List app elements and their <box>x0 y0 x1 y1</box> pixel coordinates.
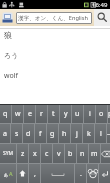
staticText: h <box>62 129 67 139</box>
button[interactable]: d <box>23 124 34 143</box>
staticText: m <box>91 149 98 159</box>
button[interactable]: p <box>108 105 110 123</box>
button[interactable]: 漢字、オン、くん、English <box>16 12 92 24</box>
button[interactable]: Shift <box>17 164 28 183</box>
button[interactable]: u <box>72 105 83 123</box>
staticText: c <box>45 149 49 159</box>
staticText: u <box>75 109 80 119</box>
button[interactable]: z <box>17 144 28 163</box>
staticText: g <box>50 129 55 139</box>
button[interactable]: k <box>83 124 94 143</box>
button[interactable]: o <box>96 105 107 123</box>
staticText: r <box>40 109 43 119</box>
staticText: a <box>3 129 7 139</box>
button[interactable]: m <box>89 144 100 163</box>
staticText: , <box>34 169 36 179</box>
button[interactable]: ー <box>107 124 110 143</box>
button[interactable]: h <box>59 124 70 143</box>
staticText: l <box>100 129 102 139</box>
staticText: e <box>28 109 32 119</box>
staticText: p <box>108 109 110 119</box>
staticText: k <box>87 129 91 139</box>
staticText: 狼 <box>4 30 12 40</box>
staticText: ろう <box>4 51 19 60</box>
button[interactable]: Space <box>41 164 74 183</box>
button[interactable]: s <box>11 124 22 143</box>
staticText: d <box>26 129 31 139</box>
button[interactable]: i <box>84 105 95 123</box>
button[interactable]: SYM <box>0 144 16 163</box>
button[interactable]: Backspace <box>101 144 110 163</box>
staticText: . <box>80 169 82 179</box>
staticText: n <box>80 149 85 159</box>
button[interactable]: Emoji <box>87 164 98 183</box>
staticText: v <box>57 149 61 159</box>
button[interactable]: r <box>36 105 47 123</box>
staticText: j <box>76 129 78 139</box>
button[interactable]: w <box>12 105 23 123</box>
staticText: wolf <box>4 71 18 81</box>
button[interactable]: q <box>0 105 11 123</box>
button[interactable]: , <box>29 164 40 183</box>
button[interactable]: x <box>29 144 40 163</box>
staticText: 16:49 <box>92 1 108 9</box>
button[interactable]: y <box>60 105 71 123</box>
staticText: SYM <box>3 150 14 157</box>
button[interactable]: v <box>53 144 64 163</box>
staticText: ー <box>107 131 110 137</box>
button[interactable]: g <box>47 124 58 143</box>
button[interactable]: c <box>41 144 52 163</box>
button[interactable]: Search <box>94 9 110 26</box>
button[interactable]: j <box>71 124 82 143</box>
button[interactable]: Enter <box>99 164 110 183</box>
button[interactable]: t <box>48 105 59 123</box>
staticText: A <box>9 170 13 177</box>
staticText: 漢字、オン、くん、English <box>18 14 88 22</box>
staticText: z <box>21 149 25 159</box>
button[interactable]: b <box>65 144 76 163</box>
staticText: t <box>52 109 55 119</box>
staticText: y <box>64 109 68 119</box>
staticText: f <box>39 129 42 139</box>
staticText: o <box>99 109 104 119</box>
button[interactable]: f <box>35 124 46 143</box>
staticText: ぁ <box>3 171 9 177</box>
button[interactable]: Switch language <box>0 164 16 183</box>
button[interactable]: e <box>24 105 35 123</box>
button[interactable]: n <box>77 144 88 163</box>
button[interactable]: l <box>95 124 106 143</box>
button[interactable]: 狼 <box>0 26 110 104</box>
button[interactable]: App icon <box>2 12 13 23</box>
staticText: s <box>15 129 19 139</box>
button[interactable]: a <box>0 124 10 143</box>
staticText: w <box>15 109 21 119</box>
button[interactable]: . <box>75 164 86 183</box>
staticText: q <box>3 109 8 119</box>
staticText: i <box>89 109 91 119</box>
staticText: b <box>68 149 73 159</box>
staticText: x <box>33 149 37 159</box>
